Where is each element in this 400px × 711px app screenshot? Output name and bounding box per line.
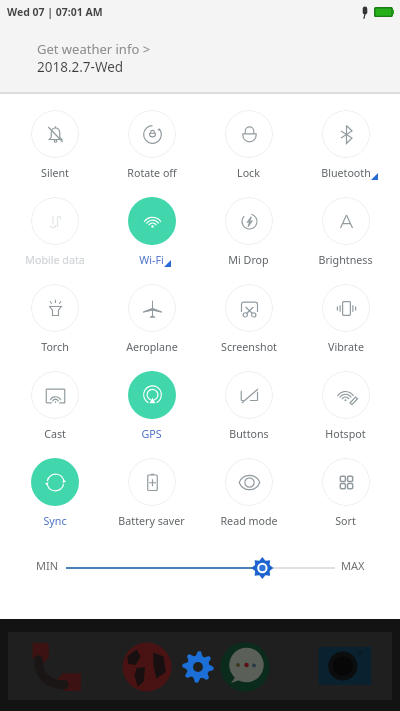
button[interactable]: Silent	[6, 110, 103, 197]
staticText: Battery saver	[118, 514, 185, 529]
button[interactable]	[0, 545, 400, 588]
staticText: Read mode	[220, 514, 278, 529]
button[interactable]: Vibrate	[297, 284, 394, 371]
staticText: Hotspot	[325, 427, 366, 442]
button[interactable]: Bluetooth	[297, 110, 394, 197]
staticText: Torch	[41, 340, 69, 355]
button[interactable]: Messages	[220, 642, 270, 692]
staticText: Aeroplane	[126, 340, 178, 355]
button[interactable]: Cast	[6, 371, 103, 458]
staticText: Cast	[44, 427, 66, 442]
staticText: Get weather info >	[37, 40, 151, 58]
staticText: MAX	[341, 558, 365, 573]
button[interactable]: Battery saver	[103, 458, 200, 545]
staticText: Mi Drop	[228, 253, 269, 268]
button[interactable]: Torch	[6, 284, 103, 371]
button[interactable]: Rotate off	[103, 110, 200, 197]
button[interactable]: Mobile data	[6, 197, 103, 284]
staticText: 2018.2.7-Wed	[37, 58, 124, 76]
button[interactable]: Hotspot	[297, 371, 394, 458]
button[interactable]: Buttons	[200, 371, 297, 458]
button[interactable]: Sync	[6, 458, 103, 545]
button[interactable]: Get weather info >	[37, 40, 151, 58]
staticText: Lock	[237, 166, 260, 181]
button[interactable]: Sort	[297, 458, 394, 545]
button[interactable]: Settings	[182, 651, 214, 683]
staticText: Mobile data	[25, 253, 85, 268]
staticText: Sort	[335, 514, 356, 529]
staticText: Wed 07 | 07:01 AM	[7, 5, 103, 19]
staticText: Vibrate	[328, 340, 364, 355]
button[interactable]: Phone	[30, 640, 82, 692]
staticText: MIN	[36, 558, 59, 573]
button[interactable]: Lock	[200, 110, 297, 197]
staticText: Rotate off	[127, 166, 177, 181]
button[interactable]: Aeroplane	[103, 284, 200, 371]
staticText: Wi-Fi	[139, 253, 164, 268]
button[interactable]: Screenshot	[200, 284, 297, 371]
staticText: Bluetooth	[321, 166, 371, 181]
button[interactable]: Brightness	[297, 197, 394, 284]
staticText: GPS	[141, 427, 162, 442]
staticText: Brightness	[318, 253, 373, 268]
button[interactable]: GPS	[103, 371, 200, 458]
staticText: Silent	[41, 166, 69, 181]
button[interactable]: Wi-Fi	[103, 197, 200, 284]
button[interactable]: Browser	[121, 641, 173, 693]
button[interactable]: Read mode	[200, 458, 297, 545]
button[interactable]: Mi Drop	[200, 197, 297, 284]
button[interactable]: Camera	[317, 638, 373, 694]
staticText: Screenshot	[221, 340, 277, 355]
staticText: Buttons	[229, 427, 269, 442]
staticText: Sync	[43, 514, 67, 529]
